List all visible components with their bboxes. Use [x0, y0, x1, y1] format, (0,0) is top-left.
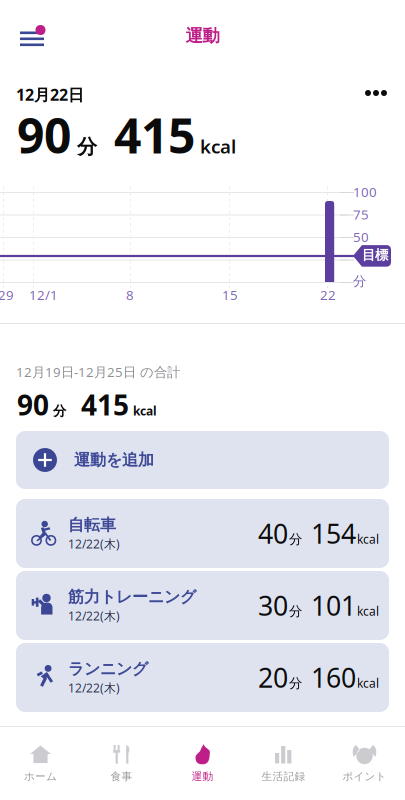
- staticText: 12/1: [29, 286, 58, 304]
- staticText: 生活記録: [261, 770, 305, 783]
- button[interactable]: 食事: [81, 737, 162, 789]
- staticText: 食事: [110, 770, 132, 783]
- staticText: kcal: [357, 531, 379, 547]
- staticText: 30: [258, 588, 288, 623]
- button[interactable]: ホーム: [0, 737, 81, 789]
- staticText: 415: [114, 103, 195, 167]
- staticText: 運動: [185, 25, 219, 46]
- button[interactable]: 筋力トレーニング: [16, 571, 389, 640]
- staticText: 分: [289, 603, 302, 620]
- staticText: 目標: [362, 247, 388, 263]
- button[interactable]: ポイント: [324, 737, 405, 789]
- staticText: 12月19日-12月25日 の合計: [16, 363, 180, 381]
- staticText: 160: [311, 660, 356, 695]
- staticText: 8: [126, 286, 134, 304]
- staticText: 運動: [191, 770, 213, 783]
- staticText: kcal: [357, 675, 379, 691]
- button[interactable]: 運動: [162, 737, 243, 789]
- staticText: 40: [258, 516, 288, 551]
- staticText: kcal: [200, 134, 236, 159]
- staticText: ランニング: [68, 659, 148, 679]
- staticText: 分: [289, 531, 302, 548]
- staticText: 自転車: [68, 515, 116, 535]
- staticText: 分: [289, 675, 302, 692]
- button[interactable]: Menu: [14, 19, 54, 55]
- staticText: 90: [17, 103, 71, 167]
- staticText: 分: [77, 135, 97, 159]
- staticText: 50: [353, 228, 369, 246]
- staticText: kcal: [357, 603, 379, 619]
- staticText: 運動を追加: [74, 450, 154, 470]
- staticText: 101: [311, 588, 356, 623]
- button[interactable]: 自転車: [16, 499, 389, 568]
- staticText: 筋力トレーニング: [68, 587, 196, 607]
- button[interactable]: 生活記録: [243, 737, 324, 789]
- staticText: 12/22(木): [68, 536, 120, 552]
- staticText: 分: [353, 273, 366, 289]
- staticText: 12月22日: [16, 84, 84, 105]
- staticText: ポイント: [342, 770, 386, 783]
- button[interactable]: More options: [358, 83, 394, 103]
- staticText: 12/22(木): [68, 680, 120, 696]
- staticText: 100: [353, 183, 377, 201]
- staticText: 154: [311, 516, 356, 551]
- staticText: 22: [320, 286, 336, 304]
- staticText: ホーム: [24, 770, 57, 783]
- staticText: 20: [258, 660, 288, 695]
- staticText: 29: [0, 286, 14, 304]
- staticText: 15: [222, 286, 238, 304]
- button[interactable]: 運動を追加: [16, 431, 389, 489]
- staticText: 90: [17, 386, 49, 423]
- button[interactable]: ランニング: [16, 643, 389, 712]
- staticText: kcal: [133, 403, 157, 419]
- staticText: 分: [53, 403, 66, 419]
- staticText: 12/22(木): [68, 608, 120, 624]
- staticText: 75: [353, 205, 369, 223]
- staticText: 415: [81, 386, 129, 423]
